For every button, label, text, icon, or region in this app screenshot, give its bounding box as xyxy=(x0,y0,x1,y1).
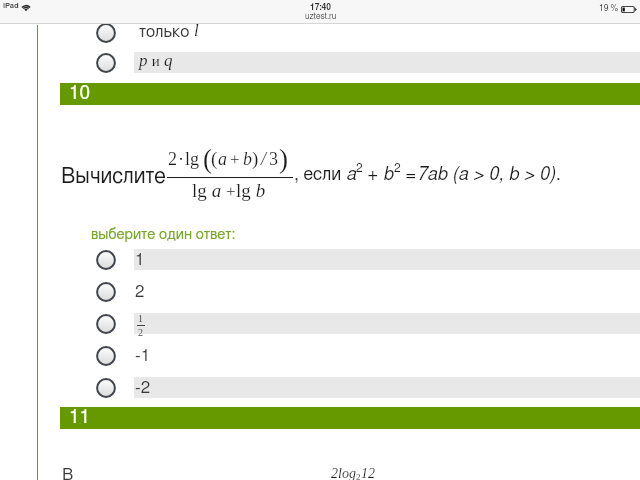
staticText: выберите один ответ: xyxy=(91,227,236,242)
other: Battery 19 percent xyxy=(621,6,637,13)
staticText: ) xyxy=(252,148,259,169)
staticText: lg xyxy=(192,180,207,201)
staticText: + xyxy=(363,166,383,184)
staticText: b xyxy=(383,166,394,184)
staticText: + xyxy=(230,150,240,169)
other: Wi-Fi signal xyxy=(21,3,31,11)
staticText: 11 xyxy=(69,408,91,427)
staticText: ( xyxy=(211,148,218,169)
button[interactable]: 1 xyxy=(0,244,640,275)
staticText: . xyxy=(556,166,561,184)
staticText: uztest.ru xyxy=(305,12,337,21)
button[interactable]: p xyxy=(0,47,640,78)
staticText: Вычислите xyxy=(61,166,166,188)
staticText: lg xyxy=(185,149,200,169)
staticText: 17:40 xyxy=(310,3,332,12)
staticText: 3 xyxy=(269,149,278,169)
staticText: 10 xyxy=(69,84,91,103)
staticText: lg xyxy=(236,180,251,201)
staticText: l xyxy=(194,21,199,40)
staticText: и xyxy=(148,53,164,70)
staticText: В xyxy=(62,466,74,480)
staticText: q xyxy=(164,51,173,70)
staticText: 2 xyxy=(168,149,177,169)
staticText: b xyxy=(243,149,252,169)
button[interactable]: 10 xyxy=(60,83,640,105)
staticText: 12 xyxy=(361,466,375,480)
staticText: 2 xyxy=(138,327,143,338)
staticText: 2 xyxy=(356,472,361,480)
staticText: 2 xyxy=(135,283,145,300)
staticText: a xyxy=(346,166,356,184)
staticText: p xyxy=(139,51,148,70)
staticText: , если xyxy=(294,166,346,184)
staticText: -2 xyxy=(135,379,151,396)
staticText: -1 xyxy=(135,347,151,364)
staticText: только xyxy=(139,23,194,40)
button[interactable]: -1 xyxy=(0,340,640,371)
staticText: 1 xyxy=(135,251,145,268)
staticText: a xyxy=(218,149,227,169)
staticText: 7ab (a > 0, b > 0) xyxy=(417,166,556,184)
button[interactable]: 11 xyxy=(60,407,640,429)
staticText: + xyxy=(226,182,236,201)
button[interactable]: 1 xyxy=(0,308,640,339)
staticText: b xyxy=(251,180,266,201)
button[interactable]: -2 xyxy=(0,372,640,403)
staticText: ) xyxy=(279,144,288,174)
staticText: 1 xyxy=(138,313,143,324)
staticText: ( xyxy=(203,144,210,174)
staticText: 2 xyxy=(394,162,401,174)
staticText: 2 xyxy=(356,162,363,174)
staticText: · xyxy=(178,149,184,169)
staticText: a xyxy=(207,180,226,201)
staticText: 19 % xyxy=(599,4,619,13)
staticText: / xyxy=(261,149,267,169)
staticText: 2log xyxy=(331,466,356,480)
staticText: = xyxy=(401,166,417,184)
button[interactable]: только xyxy=(0,17,640,48)
button[interactable]: 2 xyxy=(0,276,640,307)
staticText: iPad xyxy=(3,2,19,10)
